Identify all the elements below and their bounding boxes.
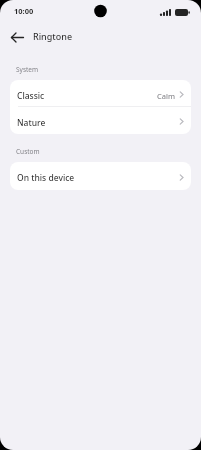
button[interactable] — [4, 25, 30, 50]
button[interactable]: Nature — [10, 107, 191, 134]
staticText: 10:00 — [14, 6, 34, 16]
button[interactable]: On this device — [10, 162, 191, 190]
staticText: Custom — [16, 147, 40, 156]
staticText: On this device — [17, 172, 75, 184]
staticText: Calm — [157, 91, 175, 101]
staticText: Classic — [17, 90, 45, 102]
button[interactable]: Classic — [10, 80, 191, 106]
staticText: Ringtone — [33, 30, 73, 42]
staticText: Nature — [17, 117, 46, 129]
staticText: System — [16, 65, 39, 74]
